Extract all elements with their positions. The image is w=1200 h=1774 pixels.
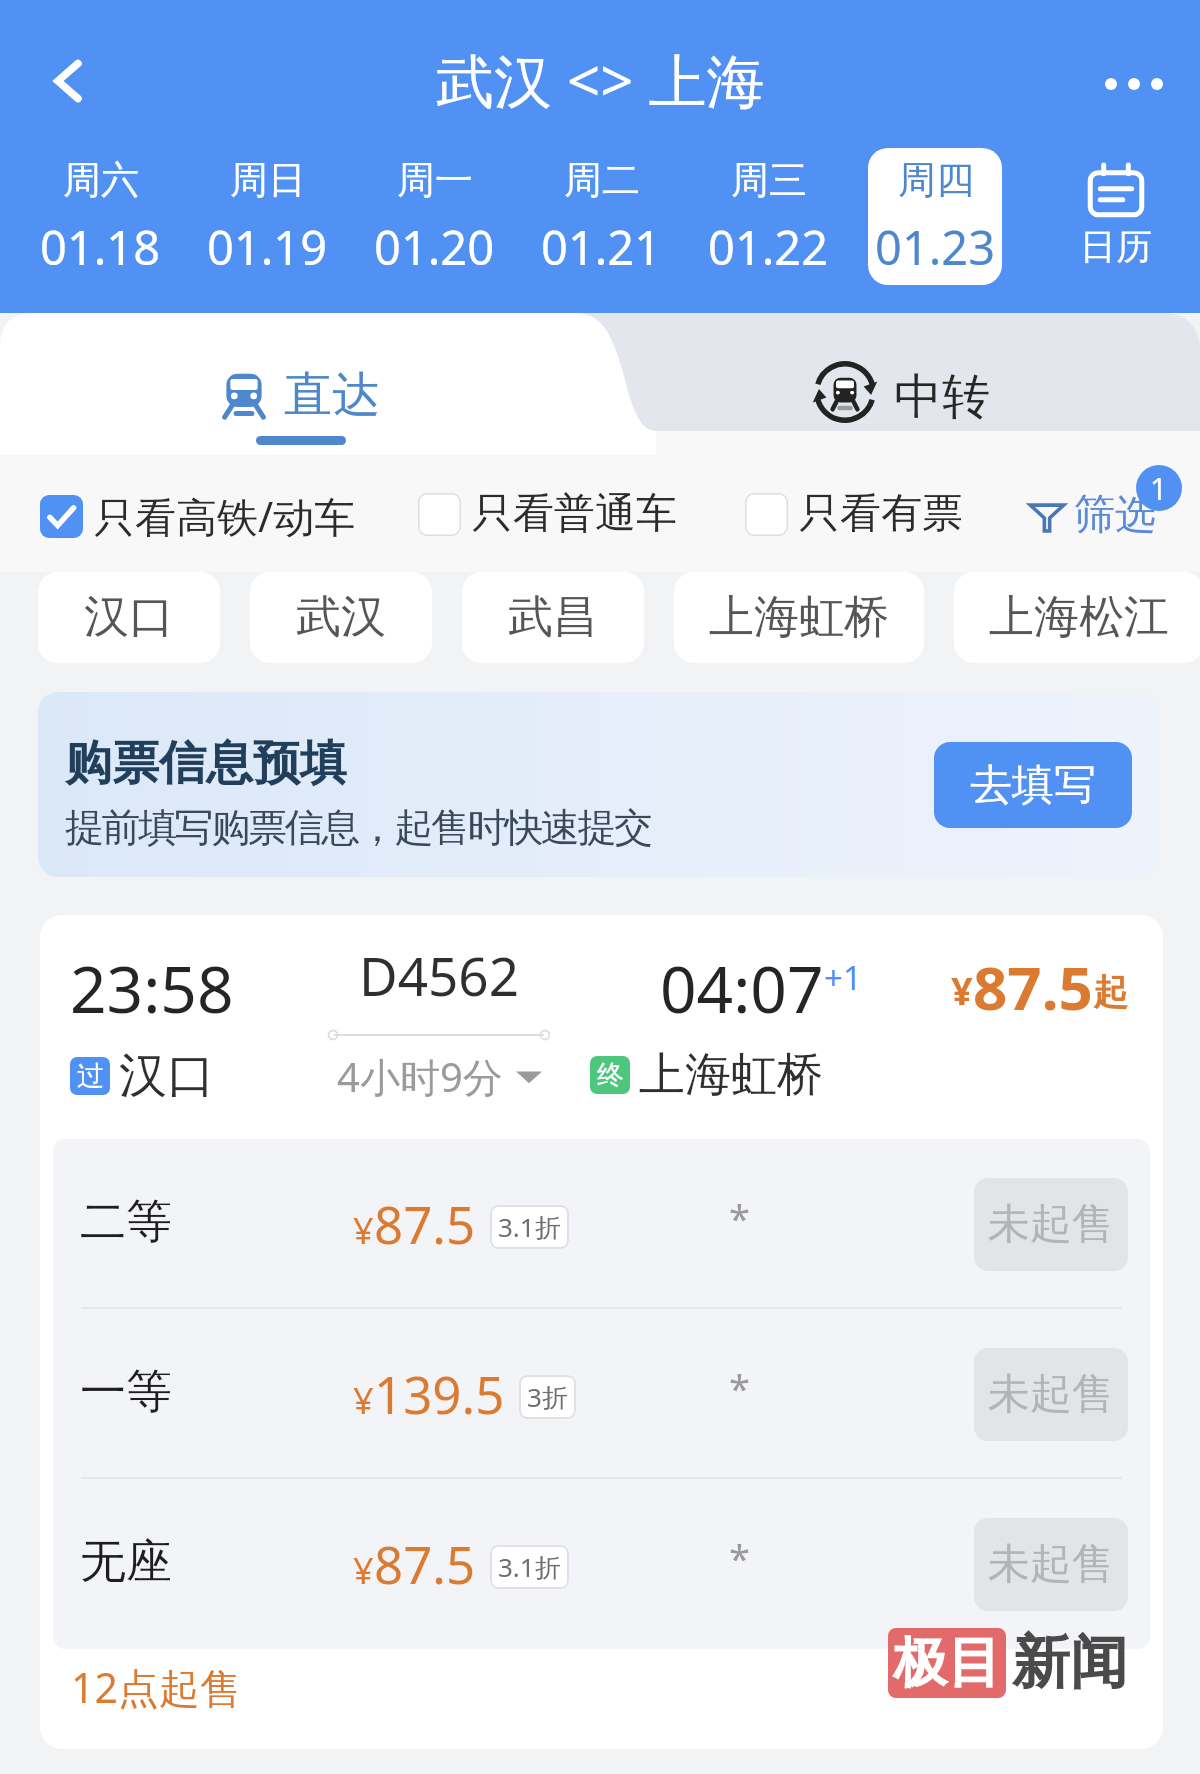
button[interactable]: 只看普通车	[418, 488, 677, 540]
button[interactable]: 周一	[367, 148, 501, 285]
staticText: 上海虹桥	[709, 589, 889, 646]
staticText: 只看有票	[799, 488, 963, 540]
staticText: 87.5	[374, 1189, 476, 1258]
button[interactable]: 周六	[33, 148, 167, 285]
staticText: 二等	[80, 1193, 172, 1251]
staticText: 未起售	[988, 1538, 1114, 1591]
staticText: *	[729, 1362, 750, 1414]
button[interactable]: 去填写	[934, 742, 1132, 828]
staticText: 01.18	[40, 215, 161, 279]
staticText: 周日	[230, 156, 306, 204]
staticText: 只看高铁/动车	[94, 488, 356, 544]
staticText: ¥	[353, 1206, 374, 1255]
button[interactable]: 周日	[200, 148, 334, 285]
staticText: 筛选	[1074, 489, 1156, 541]
staticText: 购票信息预填	[65, 734, 347, 793]
staticText: 12点起售	[71, 1659, 241, 1715]
button[interactable]: 周三	[701, 148, 835, 285]
staticText: 上海松江	[989, 589, 1169, 646]
staticText: ¥	[951, 964, 973, 1016]
staticText: 汉口	[119, 1046, 215, 1106]
staticText: 未起售	[988, 1368, 1114, 1421]
staticText: *	[729, 1192, 750, 1244]
staticText: 武昌	[508, 589, 598, 646]
staticText: 起	[1093, 970, 1128, 1014]
staticText: 新闻	[1012, 1626, 1128, 1699]
staticText: ¥	[353, 1546, 374, 1595]
staticText: 周二	[564, 156, 640, 204]
staticText: 3.1折	[498, 1209, 561, 1245]
button[interactable]: 直达	[0, 313, 578, 455]
staticText: 周六	[63, 156, 139, 204]
staticText: 04:07	[660, 945, 824, 1032]
staticText: 汉口	[84, 589, 174, 646]
button[interactable]: 汉口	[38, 572, 220, 663]
button[interactable]: 周二	[534, 148, 668, 285]
button[interactable]: 上海虹桥	[674, 572, 924, 663]
button[interactable]: 上海松江	[954, 572, 1200, 663]
staticText: 01.19	[207, 215, 328, 279]
staticText: 01.22	[708, 215, 829, 279]
staticText: 终	[597, 1058, 624, 1092]
button[interactable]: 未起售	[974, 1518, 1128, 1611]
staticText: +1	[824, 955, 862, 1000]
staticText: 3折	[527, 1379, 568, 1415]
staticText: 中转	[894, 367, 990, 427]
button[interactable]: 武汉	[250, 572, 432, 663]
staticText: D4562	[359, 939, 519, 1011]
staticText: 过	[77, 1059, 104, 1093]
staticText: 去填写	[970, 759, 1096, 812]
button[interactable]: More options	[1086, 36, 1182, 132]
staticText: 周四	[898, 156, 974, 204]
button[interactable]: Calendar	[1046, 148, 1186, 285]
staticText: 1	[1150, 468, 1168, 509]
staticText: 87.5	[374, 1529, 476, 1598]
button[interactable]: 23:58	[40, 915, 1163, 1749]
button[interactable]: 只看高铁/动车	[40, 488, 356, 544]
staticText: 武汉	[296, 589, 386, 646]
staticText: 4小时9分	[337, 1049, 503, 1104]
button[interactable]: 周四	[868, 148, 1002, 285]
staticText: 139.5	[374, 1359, 505, 1428]
button[interactable]: 只看有票	[745, 488, 963, 540]
staticText: 3.1折	[498, 1549, 561, 1585]
staticText: 周三	[731, 156, 807, 204]
button[interactable]: 未起售	[974, 1178, 1128, 1271]
staticText: 日历	[1080, 224, 1152, 269]
staticText: 武汉 <> 上海	[436, 40, 765, 119]
button[interactable]: 未起售	[974, 1348, 1128, 1441]
button[interactable]: 筛选	[1028, 489, 1156, 541]
staticText: ¥	[353, 1376, 374, 1425]
staticText: 一等	[80, 1363, 172, 1421]
staticText: 只看普通车	[472, 488, 677, 540]
staticText: *	[729, 1532, 750, 1584]
button[interactable]: 武昌	[462, 572, 644, 663]
staticText: 直达	[284, 365, 380, 425]
staticText: 87.5	[973, 946, 1093, 1028]
staticText: 01.23	[875, 215, 996, 279]
staticText: 未起售	[988, 1198, 1114, 1251]
staticText: 极目	[893, 1629, 1001, 1697]
staticText: 周一	[397, 156, 473, 204]
staticText: 提前填写购票信息，起售时快速提交	[65, 803, 651, 852]
staticText: 23:58	[70, 945, 234, 1032]
staticText: 01.20	[374, 215, 495, 279]
staticText: 无座	[80, 1533, 172, 1591]
button[interactable]: Back	[20, 33, 116, 129]
staticText: 上海虹桥	[639, 1046, 823, 1104]
button[interactable]: 中转	[656, 313, 752, 455]
staticText: 01.21	[541, 215, 662, 279]
